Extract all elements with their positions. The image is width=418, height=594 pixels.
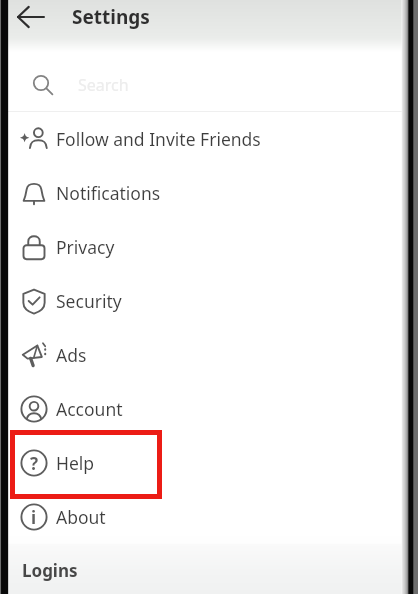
button[interactable]: Privacy <box>8 220 402 274</box>
staticText: Ads <box>56 343 87 367</box>
staticText: Search <box>78 74 129 96</box>
button[interactable]: Search <box>8 55 402 114</box>
staticText: Follow and Invite Friends <box>56 127 261 151</box>
staticText: Notifications <box>56 181 161 205</box>
button[interactable]: i <box>8 490 402 544</box>
staticText: Help <box>56 451 95 475</box>
staticText: Privacy <box>56 235 115 259</box>
staticText: ? <box>30 452 39 475</box>
staticText: Security <box>56 289 122 313</box>
button[interactable]: Follow and Invite Friends <box>8 112 402 166</box>
staticText: Settings <box>72 4 150 30</box>
staticText: i <box>31 506 37 529</box>
button[interactable]: Notifications <box>8 166 402 220</box>
staticText: About <box>56 505 106 529</box>
button[interactable]: Back <box>12 0 50 36</box>
button[interactable]: ? <box>8 436 402 490</box>
button[interactable]: Account <box>8 382 402 436</box>
staticText: Account <box>56 397 123 421</box>
button[interactable]: Ads <box>8 328 402 382</box>
staticText: Logins <box>22 559 78 582</box>
button[interactable]: Security <box>8 274 402 328</box>
